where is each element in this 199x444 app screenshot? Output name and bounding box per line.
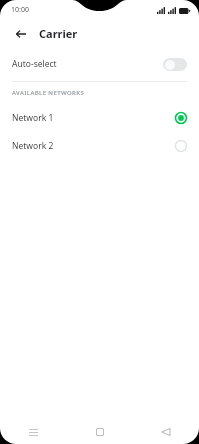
button[interactable]: Auto-select toggle: [163, 58, 187, 71]
staticText: AVAILABLE NETWORKS: [12, 89, 85, 97]
staticText: Carrier: [39, 26, 78, 41]
button[interactable]: Network 2: [0, 132, 199, 160]
staticText: 10:00: [11, 5, 29, 15]
button[interactable]: Recent apps: [0, 420, 67, 444]
staticText: Network 2: [12, 140, 175, 152]
staticText: Auto-select: [12, 58, 163, 70]
button[interactable]: Network 1: [0, 104, 199, 132]
button[interactable]: Back: [133, 420, 199, 444]
staticText: Network 1: [12, 112, 175, 124]
button[interactable]: Back: [11, 24, 31, 44]
button[interactable]: Home: [67, 420, 133, 444]
button[interactable]: Auto-select: [0, 47, 199, 81]
